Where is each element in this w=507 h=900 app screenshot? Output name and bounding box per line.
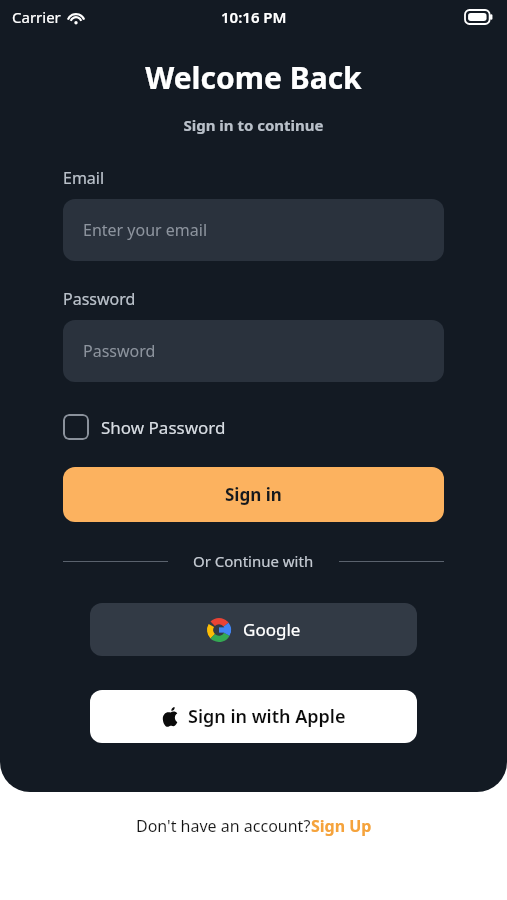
- staticText: Sign in with Apple: [188, 704, 346, 729]
- staticText: Sign in to continue: [0, 115, 507, 135]
- staticText: Password: [83, 340, 156, 362]
- button[interactable]: Show Password: [63, 410, 226, 444]
- staticText: Google: [243, 618, 301, 641]
- staticText: Email: [63, 167, 105, 189]
- button[interactable]: Password: [63, 320, 444, 382]
- staticText: Show Password: [101, 416, 226, 439]
- staticText: Sign Up: [311, 815, 372, 837]
- staticText: Or Continue with: [193, 551, 314, 571]
- staticText: Welcome Back: [0, 57, 507, 98]
- staticText: Carrier: [12, 7, 61, 27]
- button[interactable]: Don't have an account?: [136, 815, 372, 837]
- button[interactable]: Sign in with Apple: [90, 690, 417, 743]
- staticText: 10:16 PM: [221, 7, 287, 27]
- staticText: Enter your email: [83, 219, 208, 241]
- staticText: Sign in: [225, 483, 282, 506]
- button[interactable]: Google: [90, 603, 417, 656]
- button[interactable]: Enter your email: [63, 199, 444, 261]
- staticText: Don't have an account?: [136, 815, 311, 837]
- staticText: Password: [63, 288, 136, 310]
- button[interactable]: Sign in: [63, 467, 444, 522]
